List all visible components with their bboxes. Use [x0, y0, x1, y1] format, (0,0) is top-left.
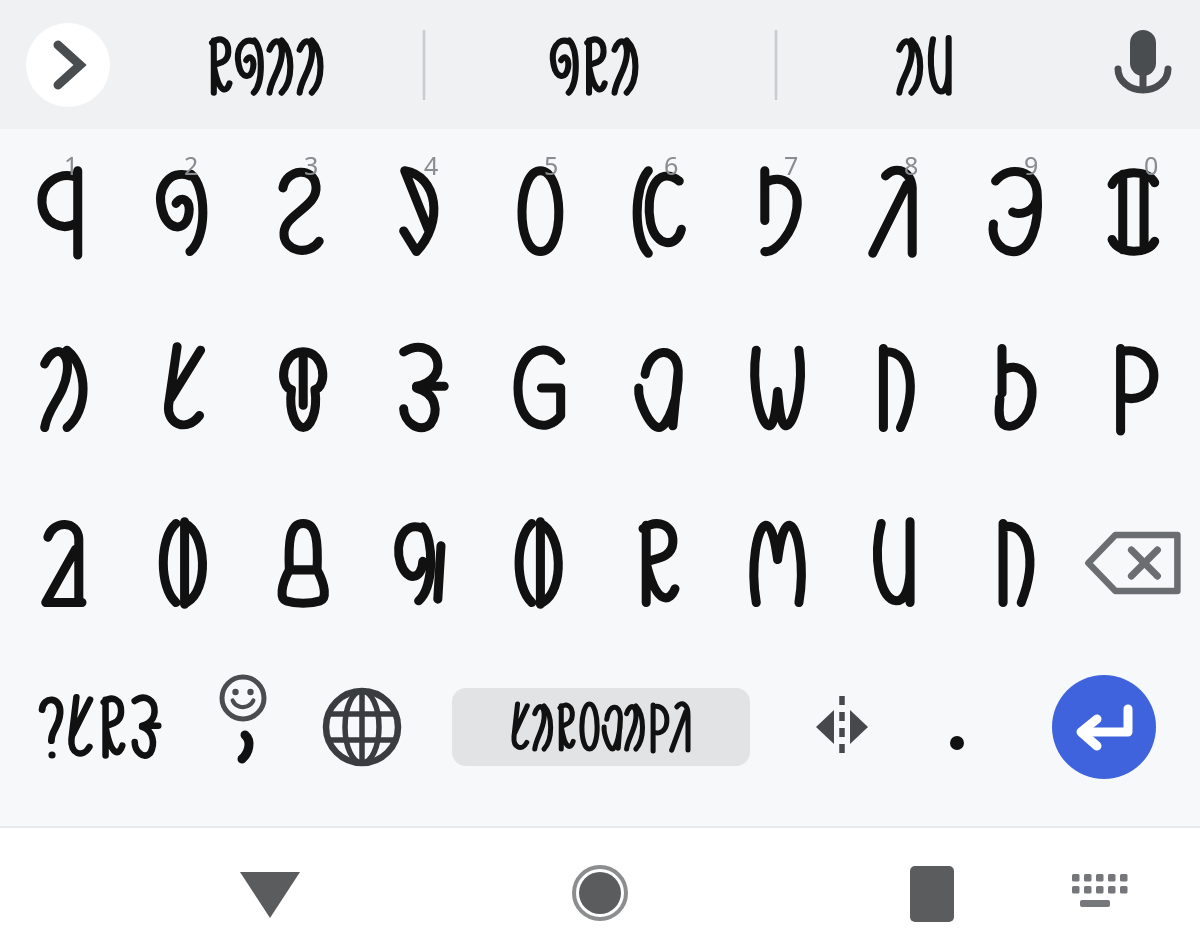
button[interactable]: Period — [880, 654, 990, 776]
button[interactable]: Key — [720, 479, 840, 654]
button[interactable]: Recent apps — [600, 826, 900, 946]
button[interactable]: Expand toolbar — [0, 0, 130, 129]
button[interactable]: Key — [960, 129, 1080, 304]
button[interactable]: Key — [120, 479, 240, 654]
staticText: 1 — [64, 148, 79, 182]
button[interactable]: Key — [960, 479, 1080, 654]
button[interactable]: Key — [840, 129, 960, 304]
button[interactable]: Backspace — [1080, 479, 1200, 654]
button[interactable]: Key — [360, 479, 480, 654]
staticText: 5 — [544, 148, 559, 182]
button[interactable]: Key — [0, 479, 120, 654]
button[interactable]: Key — [240, 304, 360, 479]
button[interactable]: Key — [240, 129, 360, 304]
button[interactable]: Key — [480, 479, 600, 654]
button[interactable] — [770, 0, 1090, 129]
button[interactable]: Enter — [990, 654, 1200, 776]
button[interactable] — [130, 0, 450, 129]
button[interactable]: Voice input — [1090, 0, 1200, 129]
button[interactable]: Space — [430, 654, 750, 776]
button[interactable]: Key — [360, 304, 480, 479]
button[interactable]: Key — [1080, 304, 1200, 479]
button[interactable]: Change keyboard — [900, 826, 1200, 946]
staticText: 9 — [1024, 148, 1039, 182]
button[interactable]: Key — [1080, 129, 1200, 304]
staticText: 3 — [304, 148, 319, 182]
button[interactable]: Key — [960, 304, 1080, 479]
staticText: 7 — [784, 148, 799, 182]
staticText: 6 — [664, 148, 679, 182]
button[interactable]: Switch language — [300, 654, 430, 776]
button[interactable]: Key — [480, 129, 600, 304]
button[interactable]: Key — [240, 479, 360, 654]
button[interactable]: Key — [480, 304, 600, 479]
button[interactable]: Key — [0, 129, 120, 304]
staticText: 2 — [184, 148, 199, 182]
staticText: 0 — [1144, 148, 1159, 182]
button[interactable]: Home — [300, 826, 600, 946]
button[interactable]: Key — [600, 479, 720, 654]
button[interactable]: Key — [600, 129, 720, 304]
button[interactable]: Key — [120, 129, 240, 304]
button[interactable]: Key — [720, 129, 840, 304]
button[interactable]: Back — [0, 826, 300, 946]
button[interactable]: Key — [120, 304, 240, 479]
staticText: 8 — [904, 148, 919, 182]
button[interactable]: Key — [360, 129, 480, 304]
button[interactable]: Key — [0, 304, 120, 479]
button[interactable]: Symbols — [0, 654, 180, 776]
staticText: 4 — [424, 148, 439, 182]
button[interactable] — [450, 0, 770, 129]
button[interactable]: Key — [720, 304, 840, 479]
button[interactable]: Emoji — [180, 654, 300, 776]
button[interactable]: Move cursor — [750, 654, 880, 776]
button[interactable]: Key — [840, 479, 960, 654]
button[interactable]: Key — [600, 304, 720, 479]
button[interactable]: Key — [840, 304, 960, 479]
